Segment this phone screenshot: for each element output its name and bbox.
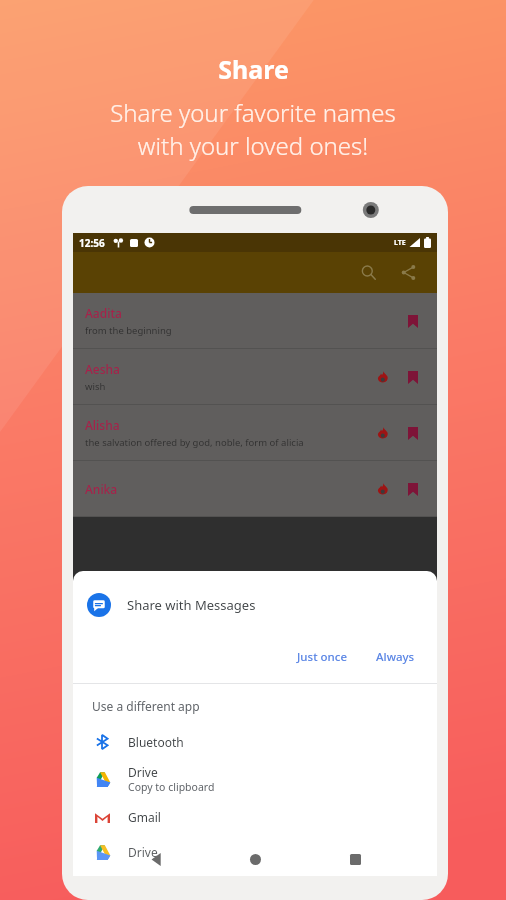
button[interactable]: Search [351, 255, 385, 289]
staticText: LTE [394, 238, 406, 248]
button[interactable]: Recents [338, 842, 372, 876]
button[interactable]: Share [391, 255, 425, 289]
staticText: Gmail [128, 809, 161, 825]
staticText: Drive [128, 764, 158, 780]
button[interactable]: Gmail [73, 799, 437, 834]
staticText: Alisha [85, 417, 120, 433]
button[interactable]: Alisha [73, 405, 437, 461]
button[interactable]: Popular [371, 477, 395, 501]
button[interactable]: Bookmark [401, 477, 425, 501]
button[interactable]: Home [238, 842, 272, 876]
staticText: Use a different app [92, 698, 200, 714]
staticText: Share your favorite names with your love… [110, 96, 396, 162]
button[interactable]: Bookmark [401, 365, 425, 389]
staticText: Copy to clipboard [128, 780, 215, 794]
staticText: Anika [85, 481, 118, 497]
button[interactable]: Bookmark [401, 421, 425, 445]
staticText: Aadita [85, 305, 122, 321]
staticText: Share [218, 52, 289, 86]
button[interactable]: Aadita [73, 293, 437, 349]
button[interactable]: Drive [73, 834, 437, 869]
button[interactable]: Aesha [73, 349, 437, 405]
staticText: Bluetooth [128, 734, 184, 750]
staticText: 12:56 [79, 236, 105, 250]
button[interactable]: Back [139, 842, 173, 876]
button[interactable]: Drive [73, 759, 437, 799]
staticText: Drive [128, 844, 158, 860]
button[interactable]: Popular [371, 365, 395, 389]
button[interactable]: Bookmark [401, 309, 425, 333]
staticText: Share with Messages [127, 596, 256, 614]
button[interactable]: Always [366, 643, 425, 671]
button[interactable]: Share with Messages [73, 585, 437, 625]
staticText: Just once [297, 649, 348, 665]
staticText: wish [85, 380, 106, 393]
button[interactable]: Popular [371, 421, 395, 445]
staticText: Aesha [85, 361, 120, 377]
button[interactable]: Anika [73, 461, 437, 517]
button[interactable]: Just once [287, 643, 358, 671]
staticText: the salvation offered by god, noble, for… [85, 436, 304, 449]
staticText: Always [376, 649, 415, 665]
button[interactable]: Bluetooth [73, 724, 437, 759]
staticText: from the beginning [85, 324, 172, 337]
